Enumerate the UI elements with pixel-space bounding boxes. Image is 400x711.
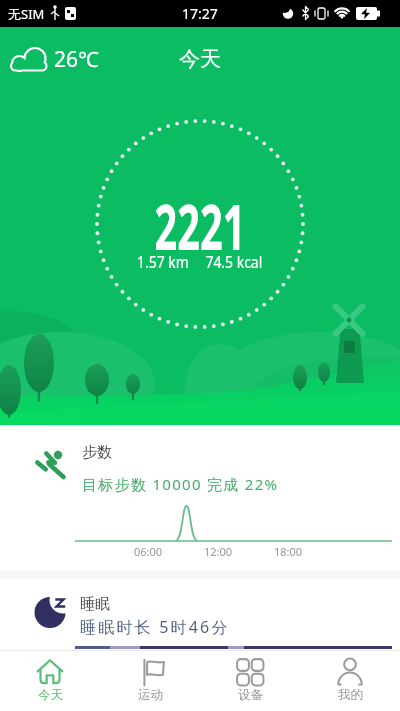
staticText: 74.5 kcal: [205, 251, 263, 272]
staticText: 今天: [179, 46, 221, 72]
staticText: 运动: [138, 687, 163, 703]
staticText: 睡眠时长 5时46分: [80, 616, 230, 638]
staticText: 无SIM: [8, 5, 45, 23]
staticText: 1.57 km: [137, 251, 189, 272]
staticText: 06:00: [128, 544, 168, 559]
button[interactable]: 睡眠: [0, 579, 400, 650]
button[interactable]: 设备: [200, 651, 300, 711]
staticText: 2221: [155, 184, 245, 268]
staticText: 设备: [238, 687, 263, 703]
staticText: 18:00: [268, 544, 308, 559]
staticText: 12:00: [198, 544, 238, 559]
button[interactable]: 今天: [0, 651, 100, 711]
staticText: 睡眠: [80, 595, 110, 614]
staticText: 17:27: [182, 4, 218, 23]
button[interactable]: 26℃: [9, 45, 99, 74]
staticText: 我的: [338, 687, 363, 703]
button[interactable]: 运动: [100, 651, 200, 711]
button[interactable]: 步数: [0, 425, 400, 570]
staticText: 步数: [82, 443, 112, 462]
staticText: 今天: [38, 687, 63, 703]
staticText: 目标步数 10000 完成 22%: [82, 474, 279, 494]
staticText: 26℃: [54, 45, 99, 74]
button[interactable]: 我的: [300, 651, 400, 711]
